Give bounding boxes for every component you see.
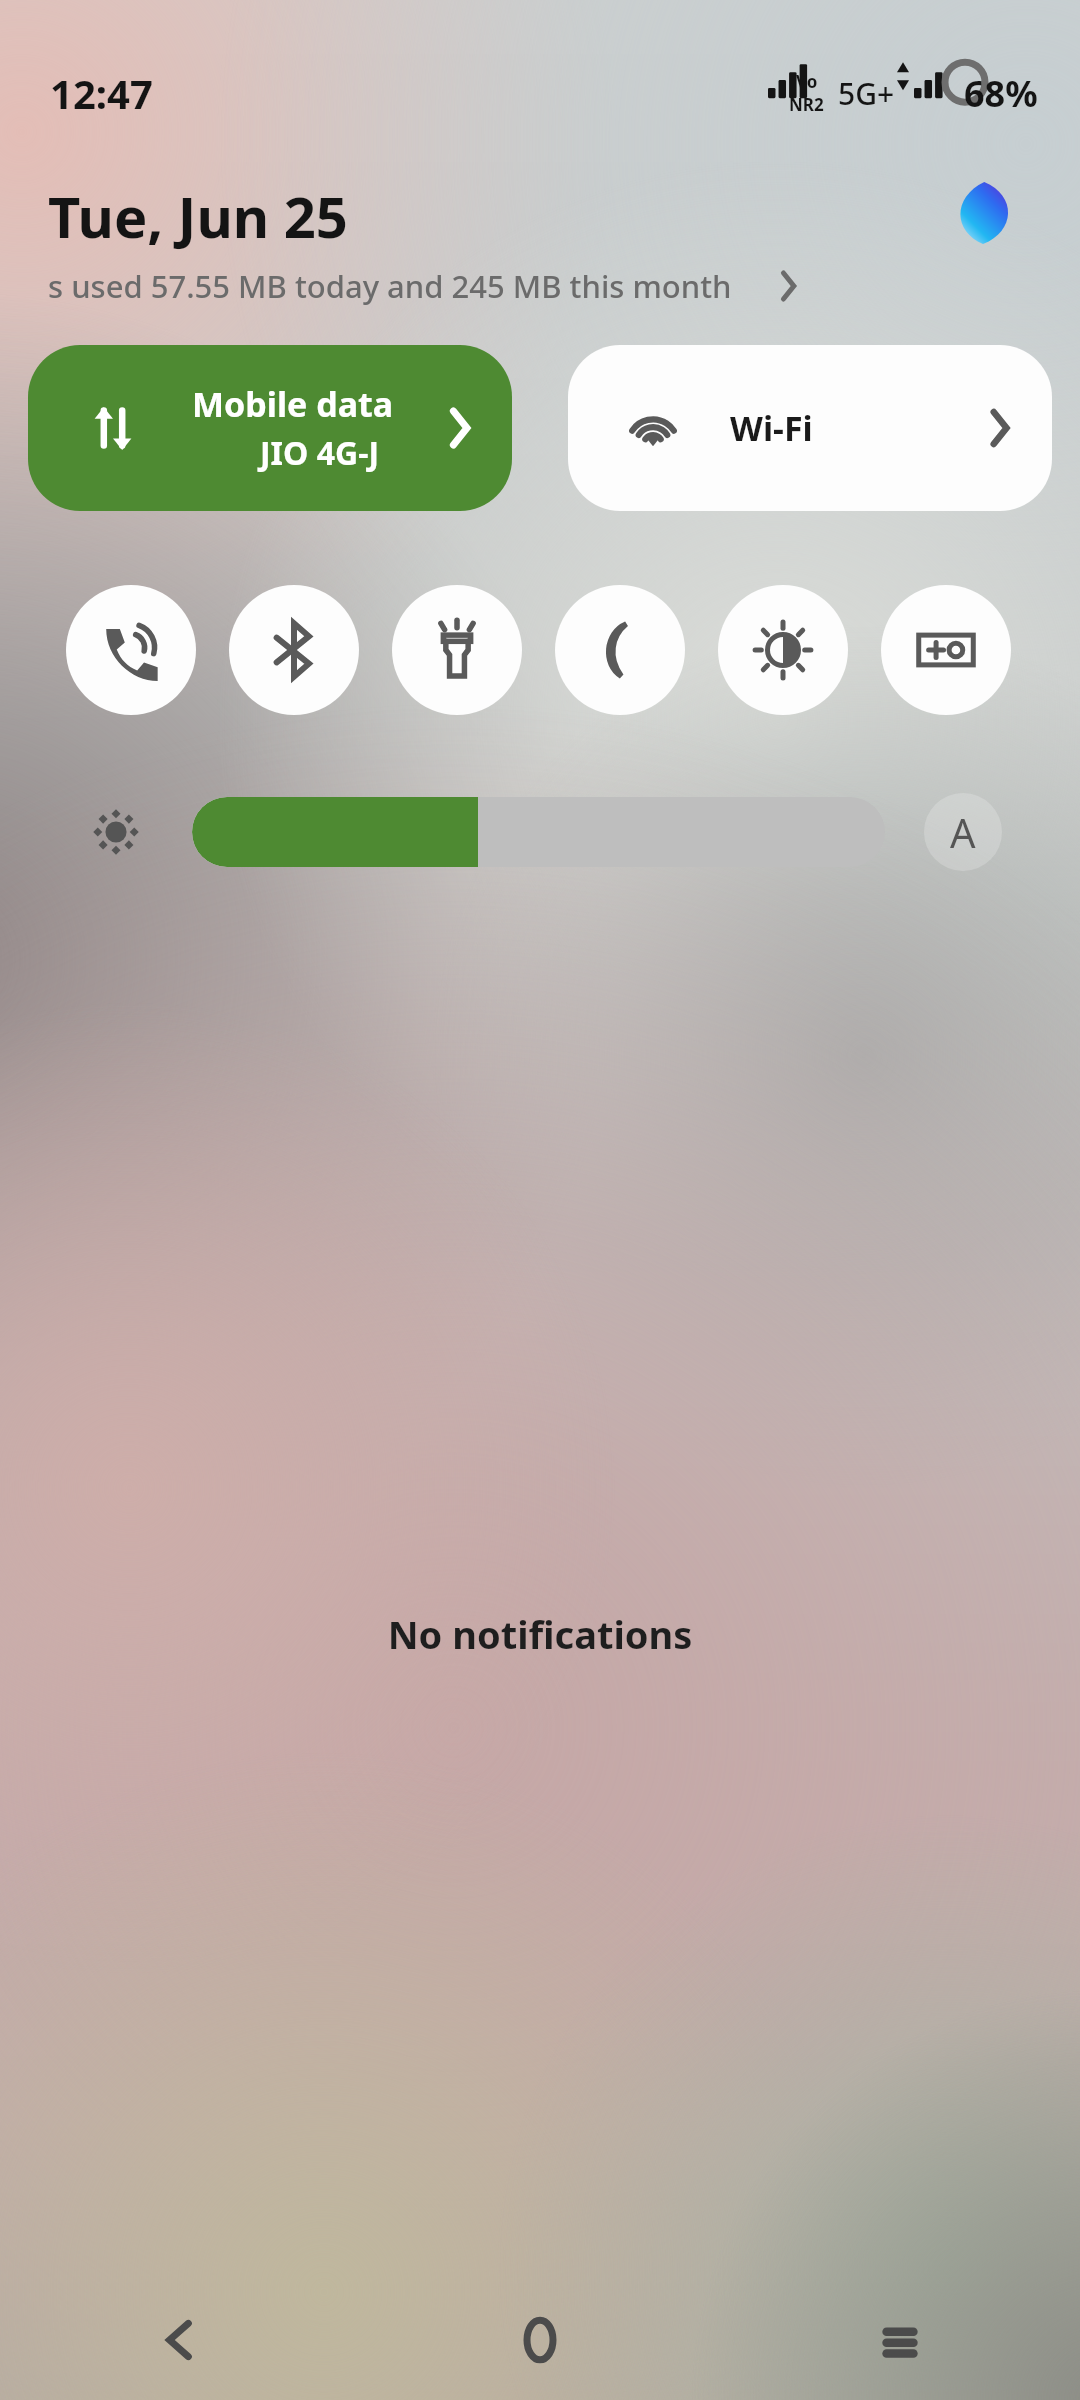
staticText: Wi-Fi [730, 405, 980, 451]
staticText: NR2 [789, 93, 824, 116]
button[interactable] [192, 797, 885, 867]
staticText: Vo [796, 70, 818, 93]
button[interactable]: Home [360, 2280, 720, 2400]
button[interactable]: Recent apps [720, 2280, 1080, 2400]
button[interactable]: Auto brightness [924, 793, 1002, 871]
staticText: s used 57.55 MB today and 245 MB this mo… [48, 265, 732, 307]
button[interactable]: Eye comfort shield [718, 585, 848, 715]
button[interactable]: Back [0, 2280, 360, 2400]
staticText: Mobile data [192, 381, 394, 427]
button[interactable]: Mobile data [28, 345, 512, 511]
staticText: 12:47 [50, 66, 153, 120]
button[interactable]: Call [66, 585, 196, 715]
button[interactable]: s used 57.55 MB today and 245 MB this mo… [0, 258, 1080, 314]
button[interactable]: Flashlight [392, 585, 522, 715]
staticText: 68% [964, 69, 1038, 118]
button[interactable]: Wi-Fi [568, 345, 1052, 511]
staticText: JIO 4G-J [260, 431, 379, 475]
staticText: Tue, Jun 25 [48, 178, 348, 254]
staticText: A [950, 805, 976, 859]
button[interactable]: Do not disturb [555, 585, 685, 715]
staticText: 5G+ [838, 73, 895, 114]
staticText: No notifications [0, 1608, 1080, 1660]
button[interactable]: Screen recorder [881, 585, 1011, 715]
button[interactable]: Profile [952, 182, 1014, 244]
button[interactable]: Bluetooth [229, 585, 359, 715]
